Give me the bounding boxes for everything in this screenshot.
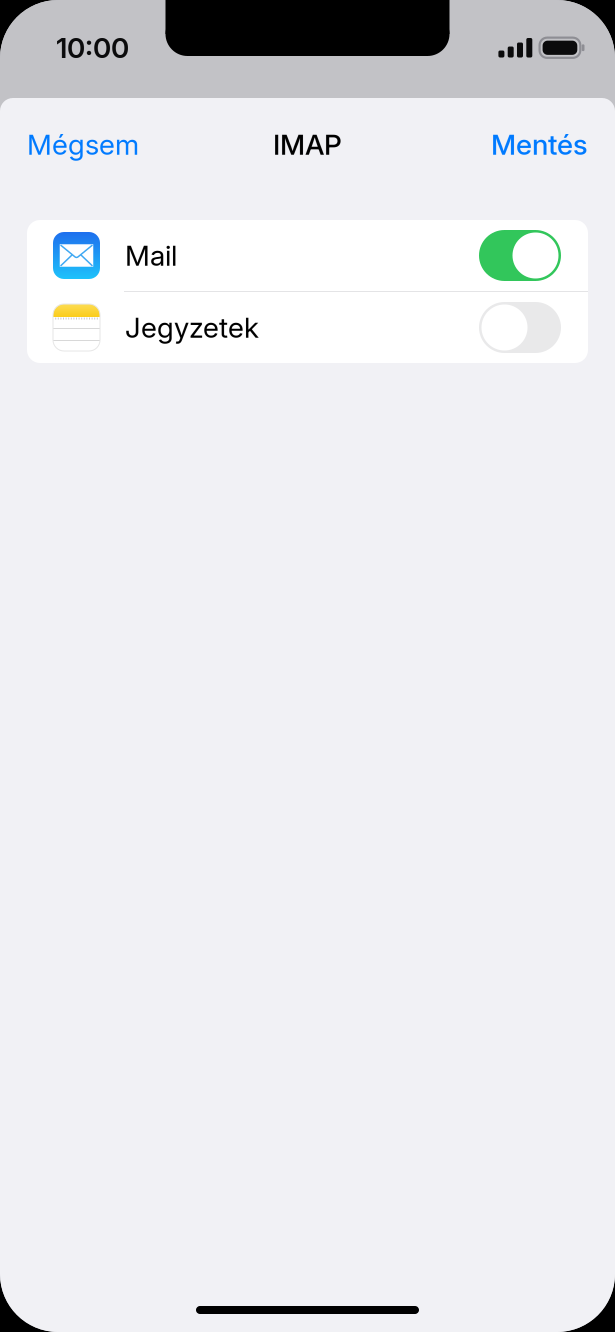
staticText: 10:00: [56, 31, 129, 65]
button[interactable]: Mentés: [464, 98, 615, 183]
button[interactable]: Mégsem: [0, 98, 166, 183]
staticText: IMAP: [273, 128, 342, 161]
button[interactable]: Jegyzetek: [27, 292, 588, 363]
staticText: Jegyzetek: [125, 311, 259, 344]
staticText: Mentés: [491, 128, 588, 161]
staticText: Mail: [125, 239, 177, 272]
button[interactable]: Mail: [27, 220, 588, 291]
staticText: Mégsem: [27, 128, 139, 161]
